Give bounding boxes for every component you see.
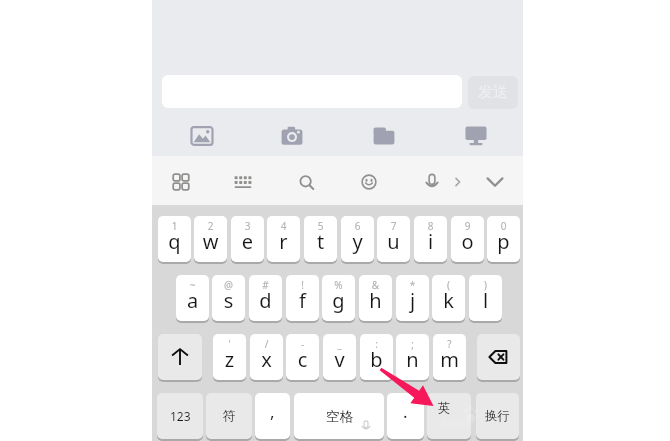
staticText: ? [433,337,466,351]
staticText: u [377,228,410,255]
staticText: a [176,287,209,314]
button[interactable]: Camera [270,115,314,159]
button[interactable]: Screen [454,115,498,159]
button[interactable]: Backspace [477,334,520,380]
staticText: , [270,400,275,423]
staticText: . [403,400,408,423]
staticText: - [286,337,319,351]
button[interactable]: Photo [180,115,224,159]
button[interactable]: p [487,216,520,262]
staticText: ; [396,337,429,351]
button[interactable]: Emoji [350,163,388,201]
button[interactable]: 123 [157,393,203,439]
staticText: 符 [223,408,236,424]
staticText: 6 [341,219,374,233]
staticText: s [212,287,245,314]
button[interactable]: u [377,216,410,262]
button[interactable]: Apps [162,163,200,201]
staticText: x [250,346,283,373]
button[interactable]: z [213,334,246,380]
staticText: d [249,287,282,314]
button[interactable]: b [360,334,393,380]
button[interactable]: Voice input [413,163,451,201]
staticText: t [304,228,337,255]
staticText: r [267,228,300,255]
staticText: j [396,287,429,314]
button[interactable]: f [286,275,319,321]
staticText: / [250,337,283,351]
button[interactable]: . [387,393,424,439]
staticText: q [158,228,191,255]
staticText: o [451,228,484,255]
staticText: ( [432,278,465,292]
staticText: 7 [377,219,410,233]
button[interactable]: l [469,275,502,321]
button[interactable]: q [158,216,191,262]
button[interactable]: w [194,216,227,262]
button[interactable]: k [432,275,465,321]
staticText: 123 [170,408,191,424]
staticText: 3 [231,219,264,233]
staticText: g [322,287,355,314]
staticText: 8 [414,219,447,233]
button[interactable]: a [176,275,209,321]
staticText: n [396,346,429,373]
staticText: 9 [451,219,484,233]
button[interactable]: m [433,334,466,380]
staticText: k [432,287,465,314]
button[interactable]: 换行 [476,393,519,439]
staticText: 4 [267,219,300,233]
button[interactable]: 发送 [468,76,518,109]
staticText: : [360,337,393,351]
staticText: m [433,346,466,373]
button[interactable]: o [451,216,484,262]
button[interactable]: e [231,216,264,262]
staticText: & [359,278,392,292]
button[interactable]: t [304,216,337,262]
staticText: 0 [487,219,520,233]
button[interactable]: x [250,334,283,380]
button[interactable]: Files [362,115,406,159]
staticText: 英 [438,400,451,416]
button[interactable]: d [249,275,282,321]
staticText: # [249,278,282,292]
button[interactable]: j [396,275,429,321]
staticText: h [359,287,392,314]
staticText: ) [469,278,502,292]
button[interactable]: 英文 [427,393,471,439]
staticText: y [341,228,374,255]
button[interactable]: c [286,334,319,380]
staticText: e [231,228,264,255]
staticText: _ [323,337,356,351]
staticText: 1 [158,219,191,233]
staticText: ' [213,337,246,351]
button[interactable]: 空格 [294,393,384,439]
button[interactable]: h [359,275,392,321]
button[interactable]: y [341,216,374,262]
button[interactable]: s [212,275,245,321]
staticText: 5 [304,219,337,233]
staticText: l [469,287,502,314]
button[interactable]: r [267,216,300,262]
staticText: f [286,287,319,314]
staticText: % [322,278,355,292]
staticText: b [360,346,393,373]
button[interactable]: i [414,216,447,262]
button[interactable]: Hide keyboard [476,163,514,201]
staticText: @ [212,278,245,292]
staticText: z [213,346,246,373]
button[interactable]: Search [287,163,325,201]
button[interactable]: g [322,275,355,321]
button[interactable]: v [323,334,356,380]
staticText: 空格 [326,408,353,425]
button[interactable]: 符 [206,393,252,439]
button[interactable]: Shift [158,334,202,380]
staticText: v [323,346,356,373]
button[interactable]: , [255,393,290,439]
button[interactable]: n [396,334,429,380]
staticText: p [487,228,520,255]
staticText: 2 [194,219,227,233]
button[interactable]: Keyboard [224,163,262,201]
